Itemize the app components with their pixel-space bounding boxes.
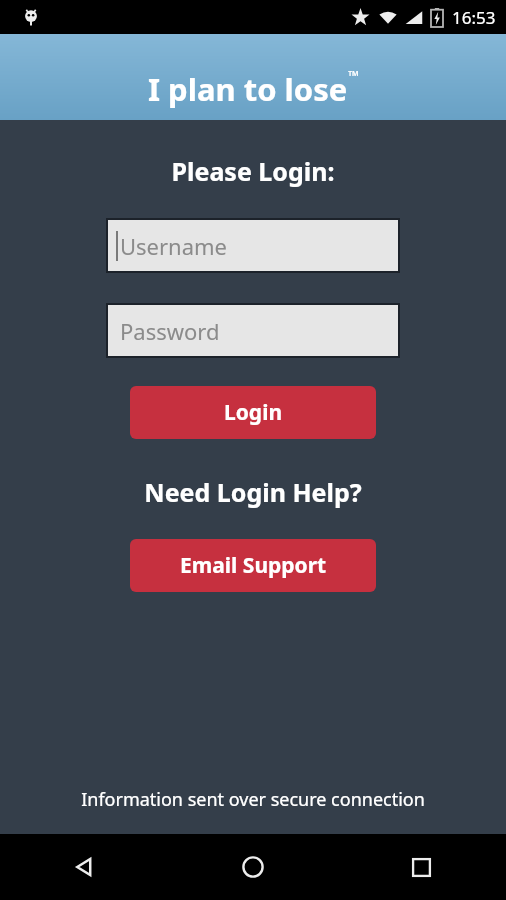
staticText: Please Login: xyxy=(171,154,335,188)
button[interactable]: Need Login Help? xyxy=(136,471,370,513)
staticText: Need Login Help? xyxy=(144,475,362,509)
staticText: Username xyxy=(120,231,228,261)
staticText: Login xyxy=(224,398,283,427)
staticText: 16:53 xyxy=(452,6,496,29)
button[interactable]: Back xyxy=(0,834,168,900)
button[interactable]: Password xyxy=(108,305,398,356)
button[interactable]: Recent apps xyxy=(337,834,506,900)
button[interactable]: Username xyxy=(108,220,398,271)
staticText: I plan to lose xyxy=(148,68,348,110)
staticText: Password xyxy=(120,316,220,346)
button[interactable]: Home xyxy=(168,834,337,900)
staticText: Information sent over secure connection xyxy=(81,787,425,812)
staticText: ™ xyxy=(348,66,359,85)
button[interactable]: Login xyxy=(130,386,376,439)
button[interactable]: Email Support xyxy=(130,539,376,592)
staticText: Email Support xyxy=(180,551,327,580)
